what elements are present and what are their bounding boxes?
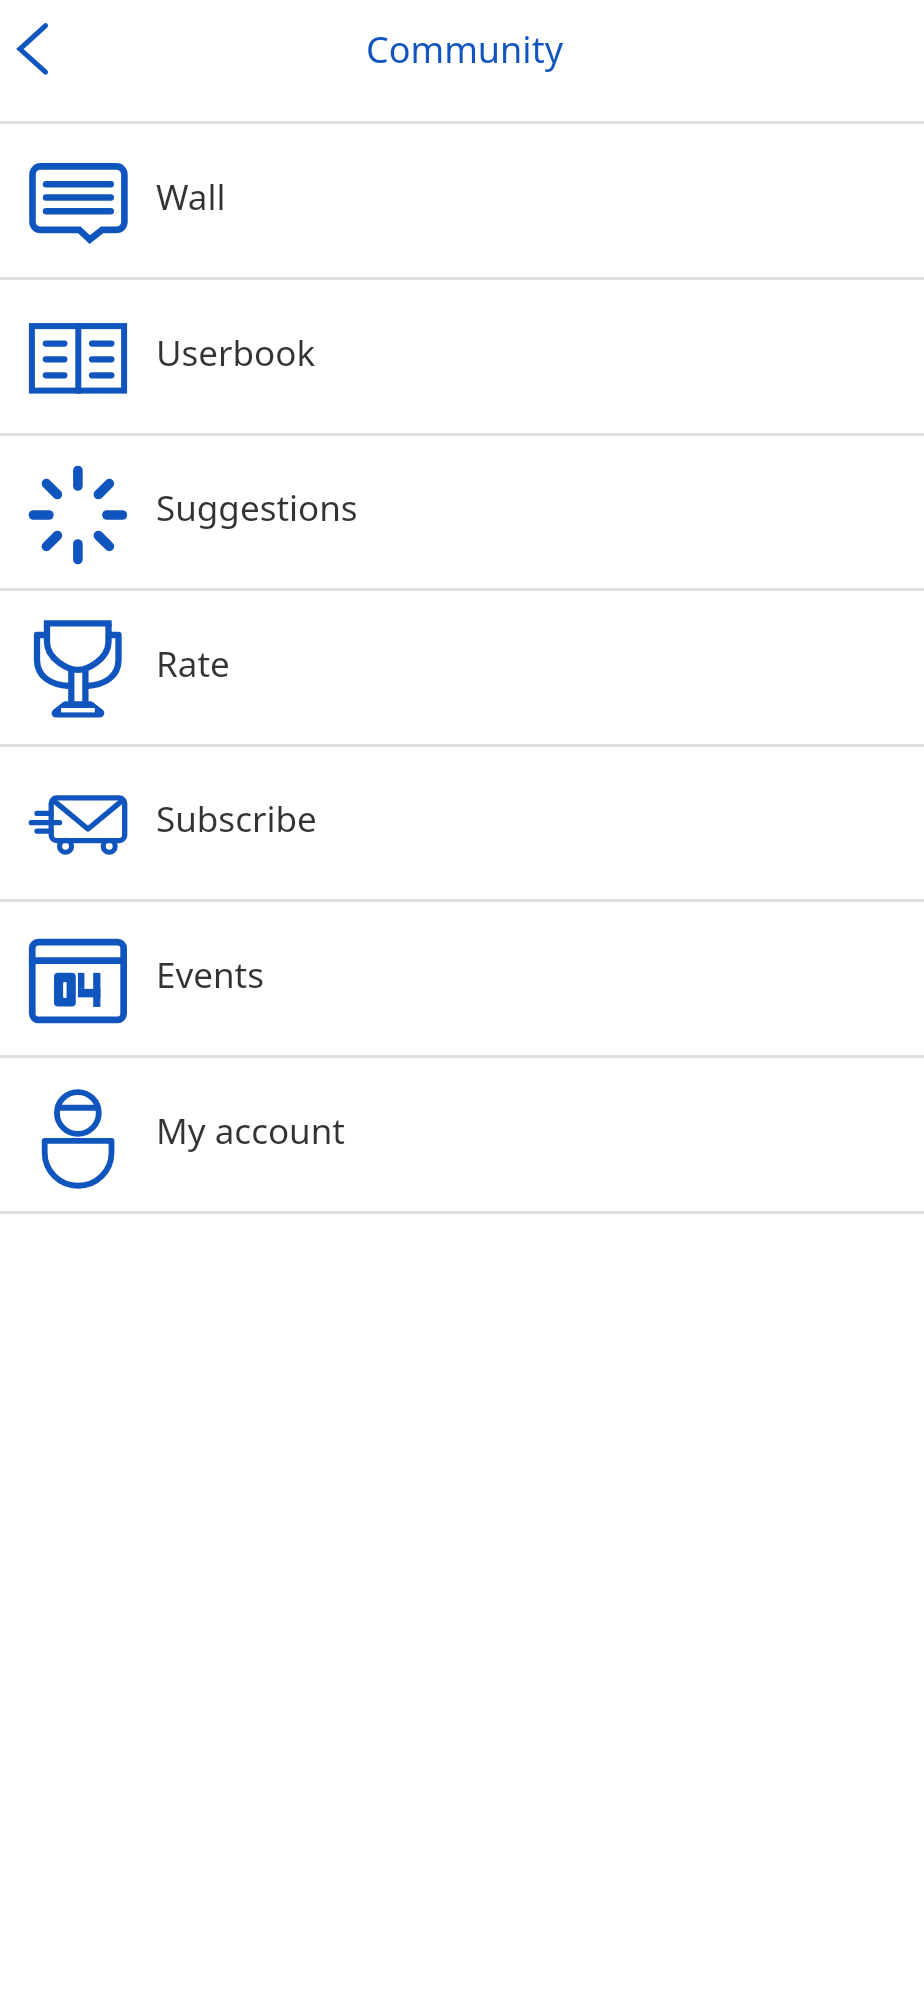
staticText: Wall: [156, 173, 226, 221]
staticText: Subscribe: [156, 795, 317, 843]
button[interactable]: Suggestions: [0, 435, 924, 588]
staticText: Userbook: [156, 329, 316, 377]
staticText: Suggestions: [156, 484, 358, 532]
button[interactable]: Userbook: [0, 280, 924, 433]
button[interactable]: My account: [0, 1058, 924, 1211]
staticText: Community: [366, 25, 563, 74]
button[interactable]: Back: [2, 12, 62, 86]
staticText: My account: [156, 1107, 346, 1155]
button[interactable]: Events: [0, 902, 924, 1055]
button[interactable]: Subscribe: [0, 746, 924, 899]
button[interactable]: Wall: [0, 124, 924, 277]
staticText: Events: [156, 951, 265, 999]
staticText: Rate: [156, 640, 230, 688]
button[interactable]: Rate: [0, 591, 924, 744]
